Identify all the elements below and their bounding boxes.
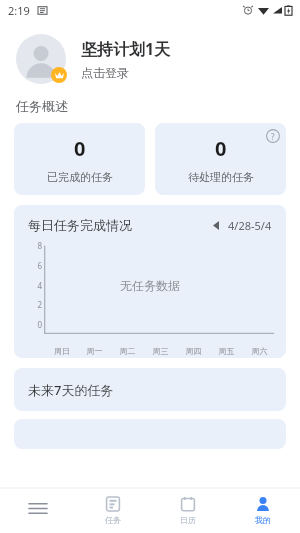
staticText: 周五: [210, 346, 243, 356]
staticText: 周日: [46, 346, 78, 356]
button[interactable]: 未来7天的任务: [14, 368, 286, 411]
button[interactable]: Menu: [0, 488, 75, 533]
staticText: 周四: [177, 346, 210, 356]
staticText: 点击登录: [81, 65, 129, 80]
staticText: 待处理的任务: [188, 170, 254, 184]
staticText: 0: [215, 135, 227, 162]
button[interactable]: 日历: [150, 488, 225, 533]
staticText: 已完成的任务: [47, 170, 113, 184]
staticText: 8: [24, 240, 42, 251]
staticText: 未来7天的任务: [28, 381, 114, 399]
staticText: 2:19: [8, 3, 30, 18]
button[interactable]: 0: [155, 123, 286, 195]
staticText: 我的: [255, 515, 271, 525]
button[interactable]: 坚持计划1天: [0, 20, 300, 98]
staticText: 无任务数据: [120, 278, 180, 293]
staticText: 4: [24, 280, 42, 291]
staticText: 6: [24, 260, 42, 271]
staticText: 日历: [180, 515, 196, 525]
staticText: ?: [271, 131, 275, 142]
button[interactable]: 0: [14, 123, 145, 195]
staticText: 周六: [243, 346, 276, 356]
button[interactable]: Previous week: [210, 218, 222, 233]
staticText: 0: [24, 319, 42, 330]
staticText: 每日任务完成情况: [28, 217, 132, 233]
staticText: 坚持计划1天: [81, 38, 171, 60]
staticText: 周一: [78, 346, 111, 356]
staticText: 4/28-5/4: [228, 218, 272, 233]
staticText: 周二: [111, 346, 144, 356]
button[interactable]: Help: [266, 129, 280, 143]
button[interactable]: 我的: [225, 488, 300, 533]
staticText: 周三: [144, 346, 177, 356]
button[interactable]: 任务: [75, 488, 150, 533]
staticText: 2: [24, 299, 42, 310]
staticText: 任务: [105, 515, 121, 525]
staticText: 任务概述: [16, 98, 68, 114]
staticText: 0: [74, 135, 86, 162]
